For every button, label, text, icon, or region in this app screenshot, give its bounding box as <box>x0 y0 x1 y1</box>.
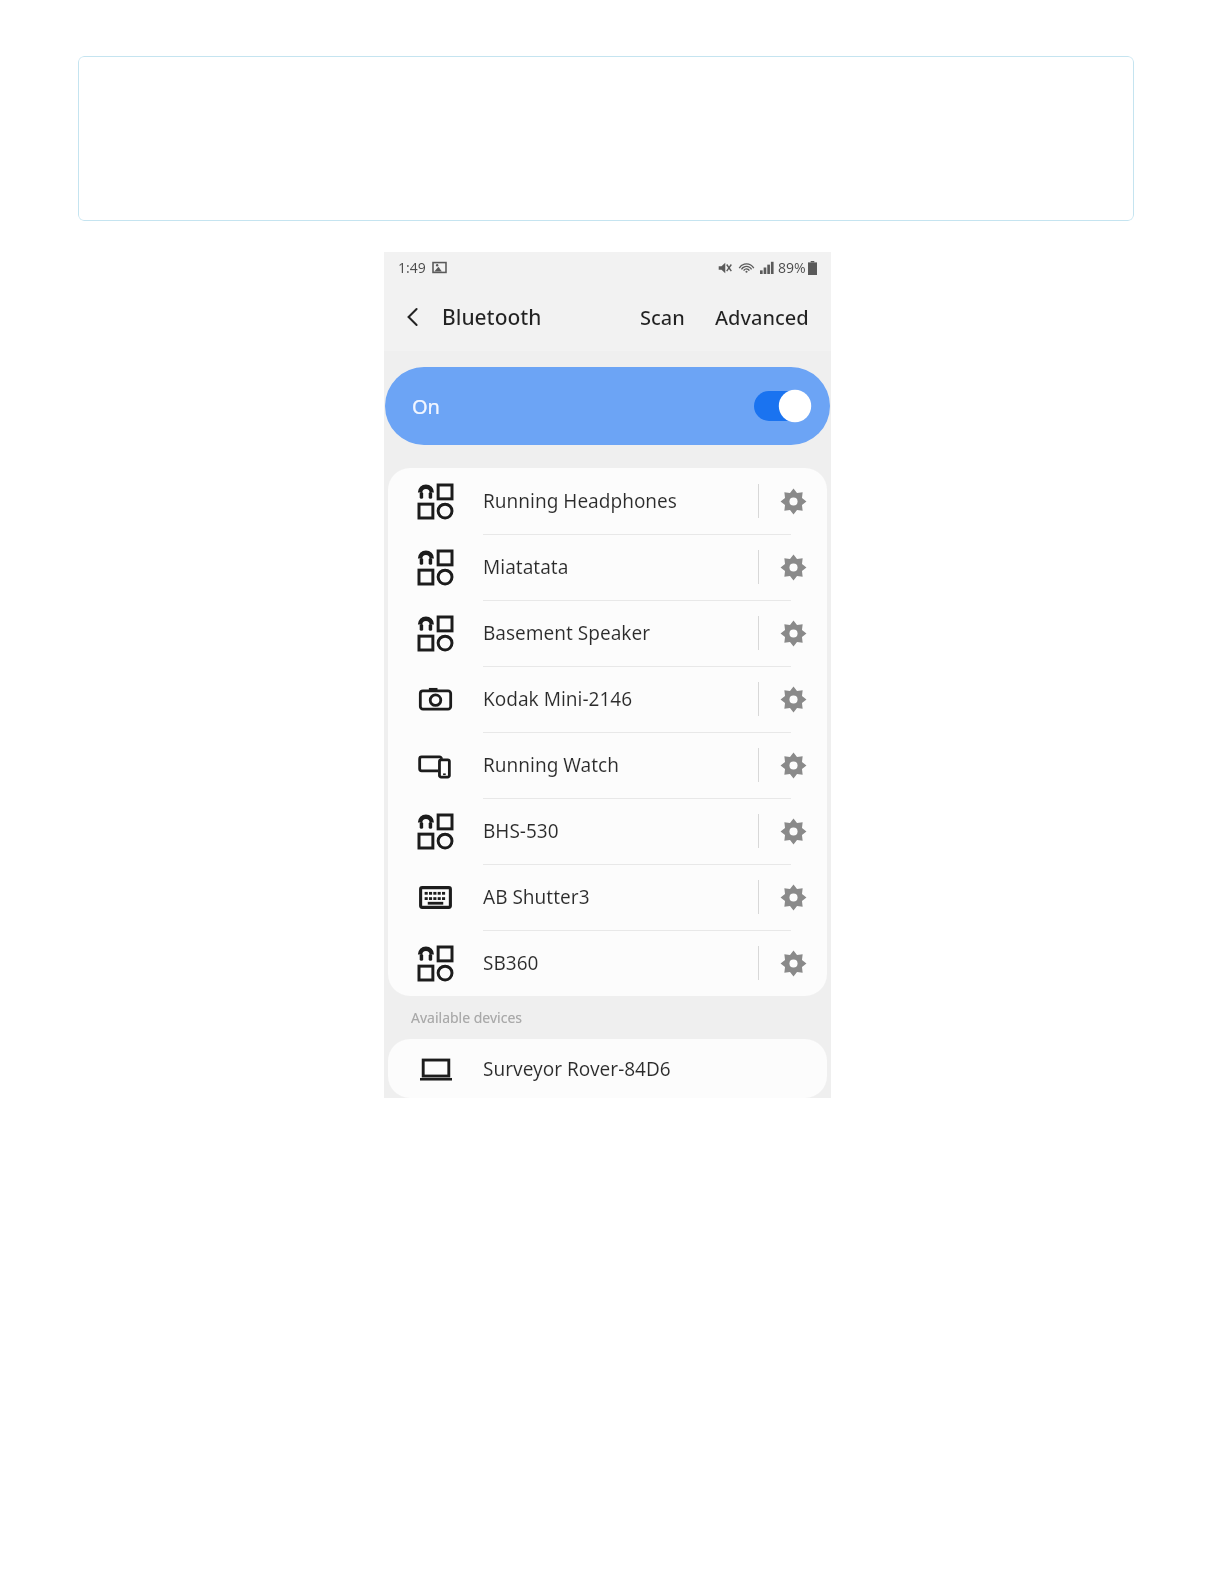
button[interactable]: Settings for Basement Speaker <box>759 600 827 666</box>
staticText: 1:49 <box>398 258 426 277</box>
staticText: BHS-530 <box>483 818 758 844</box>
button[interactable]: Settings for SB360 <box>759 930 827 996</box>
staticText: Kodak Mini-2146 <box>483 686 758 712</box>
button[interactable]: Surveyor Rover-84D6 <box>388 1039 827 1098</box>
button[interactable]: Settings for Kodak Mini-2146 <box>759 666 827 732</box>
staticText: Scan <box>640 304 685 331</box>
staticText: Bluetooth <box>442 303 542 332</box>
button[interactable]: Kodak Mini-2146 <box>388 666 827 732</box>
button[interactable]: Settings for BHS-530 <box>759 798 827 864</box>
button[interactable]: Settings for Running Headphones <box>759 468 827 534</box>
staticText: On <box>412 393 440 420</box>
staticText: Running Watch <box>483 752 758 778</box>
button[interactable]: Back <box>384 283 442 351</box>
button[interactable]: Scan <box>630 283 695 351</box>
button[interactable]: SB360 <box>388 930 827 996</box>
staticText: SB360 <box>483 950 758 976</box>
button[interactable]: BHS-530 <box>388 798 827 864</box>
staticText: 89% <box>778 258 806 277</box>
button[interactable]: Settings for AB Shutter3 <box>759 864 827 930</box>
staticText: Surveyor Rover-84D6 <box>483 1056 671 1082</box>
button[interactable]: Advanced <box>705 283 819 351</box>
button[interactable]: Miatatata <box>388 534 827 600</box>
button[interactable]: Settings for Miatatata <box>759 534 827 600</box>
staticText: Miatatata <box>483 554 758 580</box>
button[interactable]: Settings for Running Watch <box>759 732 827 798</box>
staticText: AB Shutter3 <box>483 884 758 910</box>
button[interactable]: Running Headphones <box>388 468 827 534</box>
staticText: Advanced <box>715 304 809 331</box>
staticText: Running Headphones <box>483 488 758 514</box>
button[interactable]: AB Shutter3 <box>388 864 827 930</box>
button[interactable]: Basement Speaker <box>388 600 827 666</box>
button[interactable]: Running Watch <box>388 732 827 798</box>
staticText: Available devices <box>411 1008 523 1027</box>
button[interactable]: On <box>385 367 830 445</box>
staticText: Basement Speaker <box>483 620 758 646</box>
